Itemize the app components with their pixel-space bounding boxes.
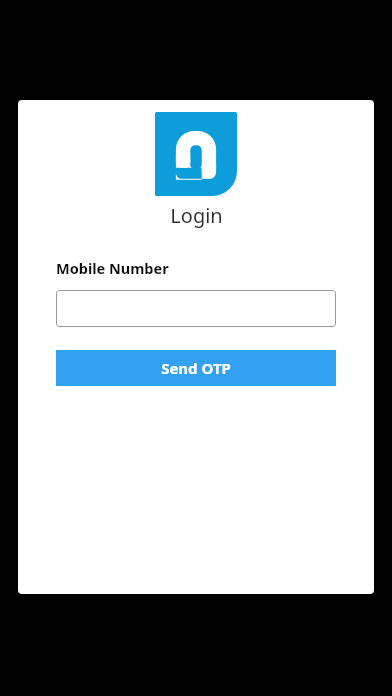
staticText: Mobile Number (56, 258, 169, 278)
button[interactable]: Send OTP (56, 350, 336, 386)
button[interactable] (56, 290, 336, 327)
staticText: Login (170, 202, 223, 229)
other: App logo (155, 112, 237, 196)
staticText: Send OTP (161, 358, 231, 378)
